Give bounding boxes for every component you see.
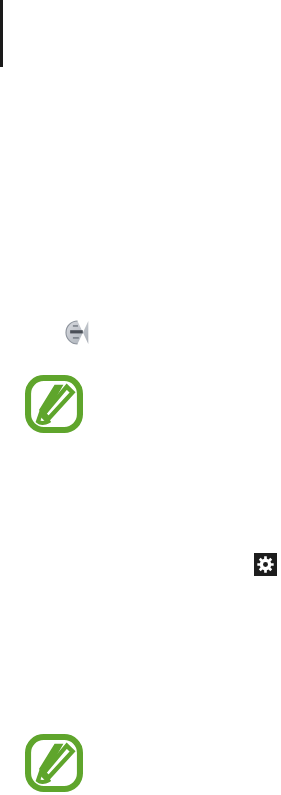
other: Badge xyxy=(66,321,89,344)
button[interactable]: Settings xyxy=(254,553,277,576)
button[interactable]: S Note xyxy=(25,375,83,433)
button[interactable]: S Note xyxy=(25,734,83,792)
